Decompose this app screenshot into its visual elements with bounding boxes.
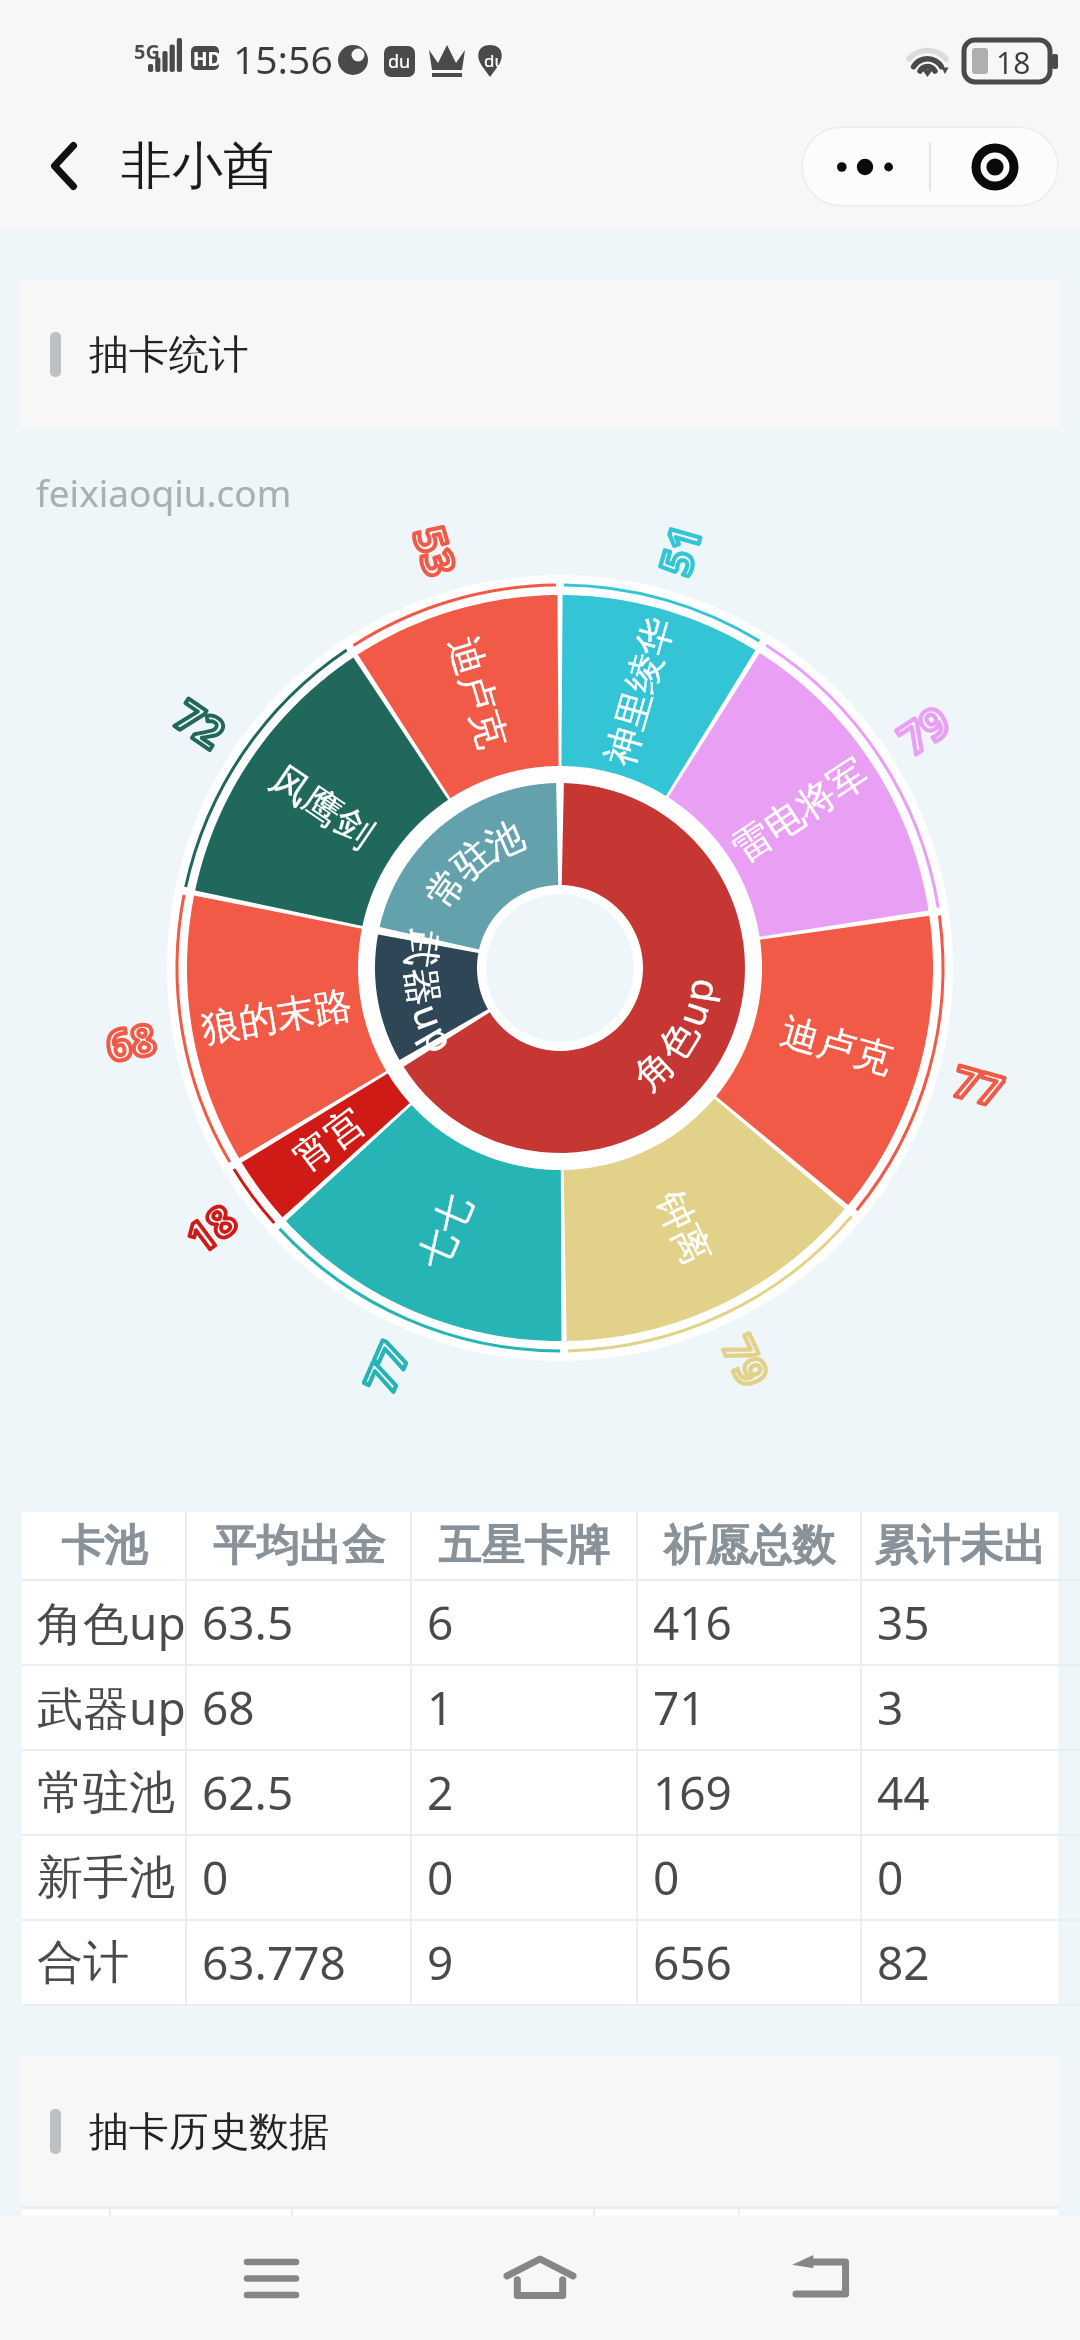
button[interactable]: 抽卡历史数据 — [20, 2056, 1060, 2206]
staticText: 71 — [653, 1676, 706, 1739]
button[interactable]: Home — [480, 2216, 600, 2340]
staticText: 抽卡统计 — [89, 329, 249, 379]
staticText: feixiaoqiu.com — [36, 467, 292, 517]
staticText: 五星卡牌 — [438, 1519, 610, 1573]
button[interactable]: Close mini program — [931, 126, 1059, 207]
staticText: 新手池 — [37, 1849, 175, 1907]
staticText: 15:56 — [233, 32, 333, 85]
button[interactable]: Back — [33, 135, 95, 197]
staticText: du — [484, 49, 505, 72]
staticText: 5G — [134, 38, 160, 65]
staticText: 62.5 — [202, 1761, 294, 1824]
staticText: 6 — [427, 1591, 454, 1654]
staticText: 0 — [653, 1846, 680, 1909]
staticText: 0 — [202, 1846, 229, 1909]
staticText: 82 — [877, 1931, 930, 1994]
staticText: 卡池 — [61, 1519, 147, 1573]
staticText: 416 — [653, 1591, 732, 1654]
button[interactable]: Back — [762, 2216, 882, 2340]
staticText: 武器up — [37, 1676, 185, 1739]
staticText: 18 — [996, 42, 1031, 83]
staticText: 63.778 — [202, 1931, 346, 1994]
staticText: 44 — [877, 1761, 930, 1824]
staticText: du — [388, 49, 411, 74]
staticText: 抽卡历史数据 — [89, 2106, 329, 2156]
button[interactable]: Recent apps — [211, 2216, 331, 2340]
staticText: 169 — [653, 1761, 732, 1824]
staticText: 68 — [202, 1676, 255, 1739]
staticText: 累计未出 — [874, 1519, 1046, 1573]
button[interactable]: More options — [801, 126, 929, 207]
staticText: HD — [193, 46, 222, 72]
staticText: 0 — [877, 1846, 904, 1909]
staticText: 祈愿总数 — [663, 1519, 835, 1573]
staticText: 常驻池 — [37, 1764, 175, 1822]
staticText: 合计 — [37, 1934, 129, 1992]
staticText: 0 — [427, 1846, 454, 1909]
staticText: 非小酋 — [121, 134, 274, 198]
staticText: 656 — [653, 1931, 732, 1994]
button[interactable]: 抽卡统计 — [20, 279, 1060, 429]
staticText: 1 — [427, 1676, 454, 1739]
staticText: 平均出金 — [213, 1519, 385, 1573]
staticText: 角色up — [37, 1591, 185, 1654]
staticText: 2 — [427, 1761, 454, 1824]
staticText: 9 — [427, 1931, 454, 1994]
staticText: 35 — [877, 1591, 930, 1654]
staticText: 3 — [877, 1676, 904, 1739]
staticText: 63.5 — [202, 1591, 294, 1654]
